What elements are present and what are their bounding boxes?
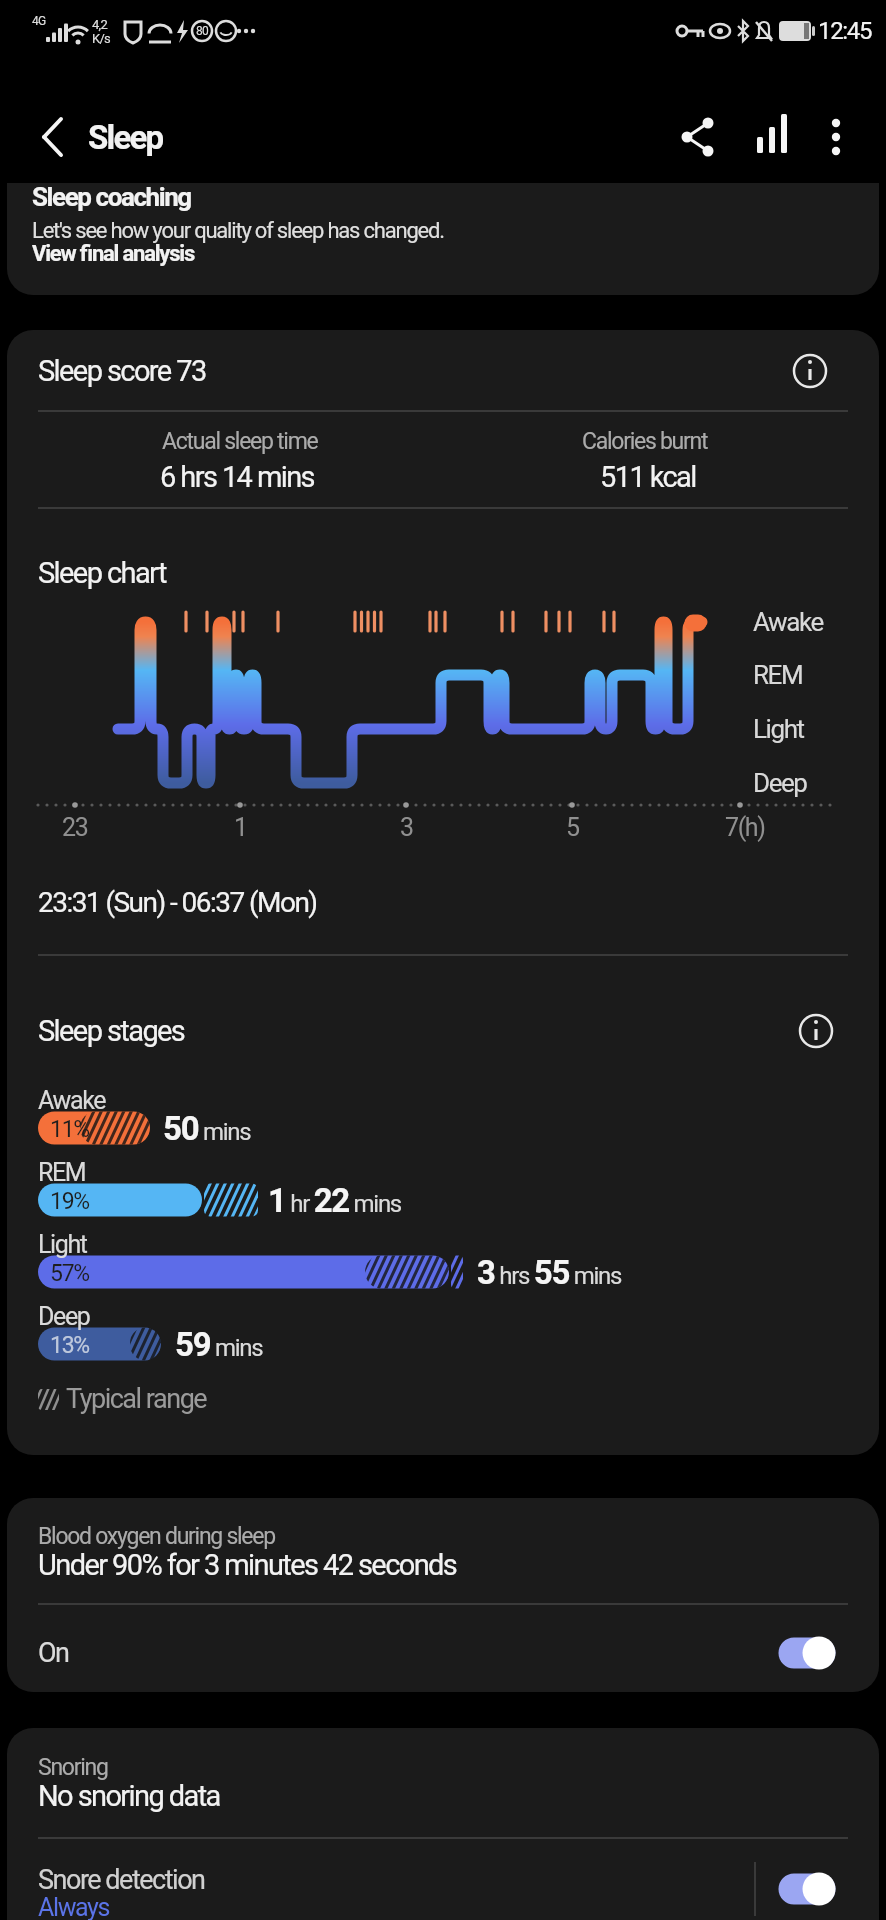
button[interactable] bbox=[742, 117, 782, 157]
staticText: 511 kcal bbox=[600, 460, 696, 494]
staticText: 23:31 (Sun) - 06:37 (Mon) bbox=[38, 886, 317, 919]
staticText: Sleep score 73 bbox=[38, 354, 206, 388]
staticText: Snore detection bbox=[38, 1864, 205, 1896]
staticText: 3 bbox=[400, 813, 413, 842]
button[interactable] bbox=[7, 183, 879, 295]
staticText: 4G bbox=[32, 14, 46, 28]
staticText: 1 bbox=[234, 813, 247, 842]
staticText: 23 bbox=[62, 813, 88, 842]
button[interactable] bbox=[790, 351, 830, 391]
staticText: Always bbox=[38, 1893, 110, 1920]
staticText: Awake bbox=[753, 607, 823, 637]
staticText: Deep bbox=[753, 768, 807, 798]
button[interactable] bbox=[30, 117, 70, 157]
staticText: Calories burnt bbox=[582, 428, 708, 455]
staticText: Light bbox=[38, 1230, 87, 1259]
staticText: 13% bbox=[50, 1332, 89, 1359]
staticText: 5 bbox=[566, 813, 579, 842]
staticText: Deep bbox=[38, 1302, 90, 1331]
staticText: 11% bbox=[50, 1116, 89, 1143]
staticText: Let's see how your quality of sleep has … bbox=[32, 218, 444, 244]
staticText: Sleep bbox=[88, 118, 163, 157]
staticText: Sleep coaching bbox=[32, 182, 191, 212]
button[interactable] bbox=[668, 117, 708, 157]
staticText: REM bbox=[753, 660, 803, 690]
button[interactable] bbox=[7, 1728, 879, 1920]
staticText: On bbox=[38, 1637, 69, 1669]
staticText: Blood oxygen during sleep bbox=[38, 1523, 275, 1550]
staticText: 80 bbox=[196, 24, 209, 38]
staticText: View final analysis bbox=[32, 241, 195, 267]
staticText: Under 90% for 3 minutes 42 seconds bbox=[38, 1548, 457, 1582]
button[interactable] bbox=[770, 1633, 846, 1673]
staticText: K/s bbox=[92, 31, 111, 46]
staticText: 3 hrs 55 mins bbox=[477, 1253, 622, 1292]
staticText: 7(h) bbox=[725, 813, 765, 842]
staticText: REM bbox=[38, 1158, 86, 1187]
button[interactable] bbox=[7, 1498, 879, 1692]
staticText: 1 hr 22 mins bbox=[268, 1181, 401, 1220]
button[interactable] bbox=[770, 1869, 846, 1909]
staticText: No snoring data bbox=[38, 1779, 220, 1813]
staticText: 6 hrs 14 mins bbox=[160, 460, 314, 494]
staticText: Light bbox=[753, 714, 804, 744]
staticText: 50 mins bbox=[163, 1109, 251, 1148]
staticText: 4,2 bbox=[92, 17, 108, 32]
staticText: Actual sleep time bbox=[162, 428, 318, 455]
button[interactable] bbox=[796, 1011, 836, 1051]
staticText: 59 mins bbox=[175, 1325, 263, 1364]
staticText: Typical range bbox=[66, 1383, 207, 1415]
button[interactable]: View final analysis bbox=[32, 240, 195, 268]
staticText: 12:45 bbox=[818, 17, 872, 45]
staticText: 19% bbox=[50, 1188, 89, 1215]
staticText: Sleep stages bbox=[38, 1014, 185, 1048]
staticText: 57% bbox=[50, 1260, 89, 1287]
staticText: Sleep chart bbox=[38, 556, 166, 590]
staticText: Awake bbox=[38, 1086, 106, 1115]
staticText: Snoring bbox=[38, 1754, 108, 1781]
button[interactable] bbox=[816, 117, 856, 157]
